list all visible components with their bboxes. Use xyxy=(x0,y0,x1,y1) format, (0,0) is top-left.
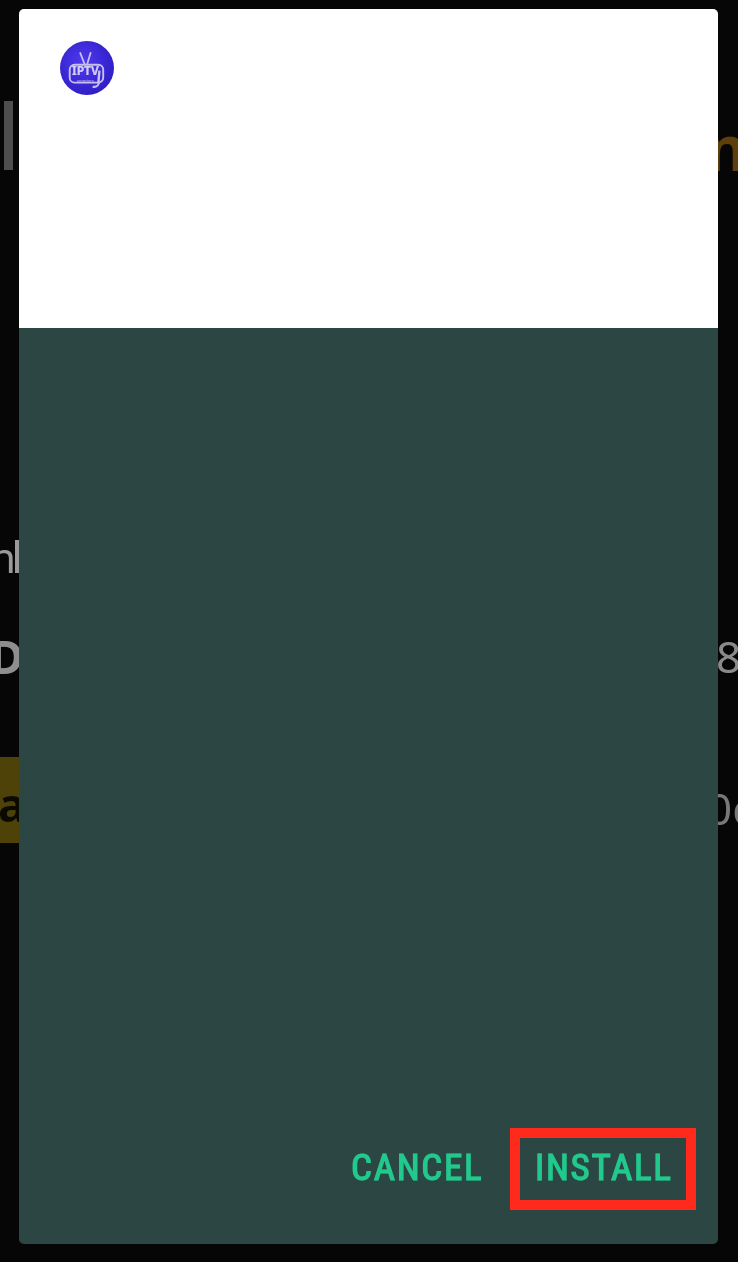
staticText: nl xyxy=(0,528,27,585)
staticText: INSTALL xyxy=(535,1146,673,1189)
button[interactable]: CANCEL xyxy=(327,1128,511,1207)
button[interactable]: INSTALL xyxy=(511,1128,697,1207)
staticText: D xyxy=(0,625,24,688)
staticText: a xyxy=(0,773,26,836)
other: IPTV Smarters app icon xyxy=(60,41,114,95)
staticText: 0c xyxy=(707,778,738,838)
staticText: ne xyxy=(706,105,738,189)
staticText: IPTV xyxy=(72,62,99,78)
staticText: CANCEL xyxy=(351,1146,484,1189)
staticText: 8 xyxy=(716,626,738,686)
staticText: smarters xyxy=(77,78,94,83)
